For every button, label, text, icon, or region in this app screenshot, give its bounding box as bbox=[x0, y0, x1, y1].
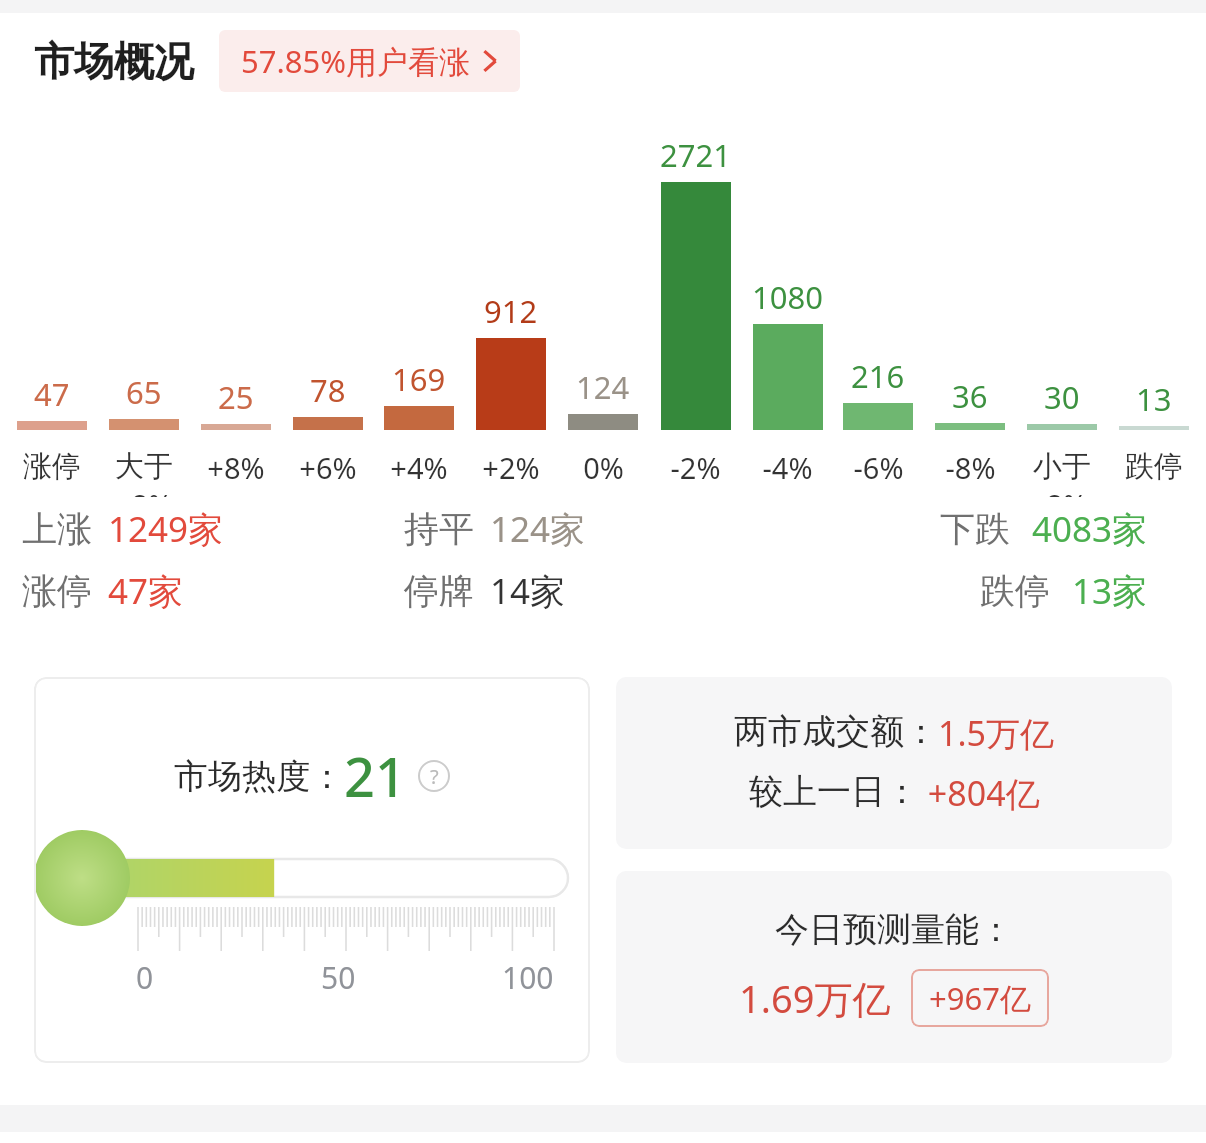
staticText: 57.85%用户看涨 bbox=[241, 40, 470, 82]
staticText: -4% bbox=[762, 448, 813, 487]
staticText: 13家 bbox=[1072, 567, 1148, 615]
button[interactable]: 两市成交额： bbox=[616, 677, 1172, 849]
staticText: -8% bbox=[1037, 485, 1088, 497]
staticText: +967亿 bbox=[929, 977, 1031, 1019]
button[interactable]: 涨停 bbox=[22, 567, 402, 615]
staticText: 4083家 bbox=[1032, 505, 1148, 553]
staticText: 78 bbox=[310, 369, 346, 411]
staticText: +8% bbox=[207, 448, 265, 487]
button[interactable]: 124 bbox=[559, 92, 647, 487]
staticText: 0% bbox=[583, 448, 624, 487]
staticText: 跌停 bbox=[1125, 448, 1183, 485]
staticText: 169 bbox=[392, 358, 446, 400]
button[interactable]: 47 bbox=[8, 92, 96, 485]
staticText: 912 bbox=[484, 290, 538, 332]
staticText: 13 bbox=[1136, 378, 1172, 420]
button[interactable]: 13 bbox=[1110, 92, 1198, 485]
staticText: 47 bbox=[34, 373, 70, 415]
button[interactable]: 216 bbox=[834, 92, 922, 487]
staticText: +8% bbox=[115, 485, 173, 497]
button[interactable]: 78 bbox=[284, 92, 372, 487]
staticText: +2% bbox=[482, 448, 540, 487]
button[interactable]: 停牌 bbox=[404, 567, 804, 615]
button[interactable]: +967亿 bbox=[911, 969, 1049, 1027]
staticText: 124 bbox=[576, 366, 630, 408]
staticText: 216 bbox=[851, 355, 905, 397]
staticText: 大于 bbox=[115, 448, 173, 485]
staticText: 两市成交额： bbox=[734, 710, 938, 753]
staticText: 1.69万亿 bbox=[739, 972, 891, 1024]
button[interactable]: 30 bbox=[1018, 92, 1106, 497]
staticText: 今日预测量能： bbox=[775, 908, 1013, 951]
staticText: 市场概况 bbox=[34, 36, 194, 86]
staticText: ? bbox=[430, 763, 439, 790]
staticText: 0 bbox=[136, 957, 154, 998]
staticText: 47家 bbox=[108, 567, 184, 615]
button[interactable]: 2721 bbox=[651, 92, 739, 487]
staticText: 下跌 bbox=[940, 507, 1010, 551]
staticText: 36 bbox=[952, 375, 988, 417]
staticText: +4% bbox=[390, 448, 448, 487]
button[interactable]: 上涨 bbox=[22, 505, 402, 553]
staticText: 14家 bbox=[490, 567, 566, 615]
staticText: 上涨 bbox=[22, 507, 92, 551]
button[interactable]: 912 bbox=[467, 92, 555, 487]
button[interactable]: 跌停 bbox=[804, 567, 1206, 615]
staticText: +6% bbox=[299, 448, 357, 487]
staticText: 较上一日： bbox=[749, 770, 919, 813]
button[interactable]: 36 bbox=[926, 92, 1014, 487]
staticText: 1080 bbox=[752, 276, 823, 318]
button[interactable]: 帮助 bbox=[418, 760, 450, 792]
button[interactable]: 持平 bbox=[404, 505, 804, 553]
staticText: -6% bbox=[853, 448, 904, 487]
button[interactable]: 1080 bbox=[743, 92, 831, 487]
staticText: 涨停 bbox=[23, 448, 81, 485]
staticText: 50 bbox=[321, 957, 356, 998]
staticText: 1249家 bbox=[108, 505, 224, 553]
staticText: -2% bbox=[670, 448, 721, 487]
staticText: 21 bbox=[344, 739, 406, 813]
staticText: +804亿 bbox=[919, 770, 1040, 816]
staticText: -8% bbox=[945, 448, 996, 487]
staticText: 市场热度： bbox=[174, 755, 344, 798]
staticText: 2721 bbox=[660, 134, 731, 176]
staticText: 124家 bbox=[490, 505, 586, 553]
staticText: 1.5万亿 bbox=[938, 710, 1055, 756]
staticText: 65 bbox=[126, 371, 162, 413]
button[interactable]: 169 bbox=[375, 92, 463, 487]
button[interactable]: 市场热度： bbox=[34, 677, 590, 1063]
staticText: 涨停 bbox=[22, 569, 92, 613]
staticText: 小于 bbox=[1033, 448, 1091, 485]
staticText: 持平 bbox=[404, 507, 474, 551]
button[interactable]: 25 bbox=[192, 92, 280, 487]
button[interactable]: 下跌 bbox=[804, 505, 1206, 553]
staticText: 25 bbox=[218, 376, 254, 418]
staticText: 100 bbox=[502, 957, 554, 998]
button[interactable]: 57.85%用户看涨 bbox=[219, 30, 520, 92]
staticText: 跌停 bbox=[980, 569, 1050, 613]
staticText: 停牌 bbox=[404, 569, 474, 613]
button[interactable]: 今日预测量能： bbox=[616, 871, 1172, 1063]
staticText: 30 bbox=[1044, 376, 1080, 418]
button[interactable]: 65 bbox=[100, 92, 188, 497]
